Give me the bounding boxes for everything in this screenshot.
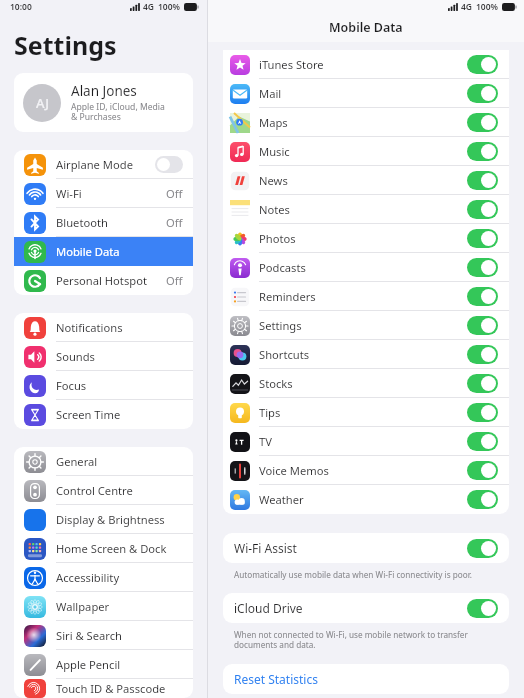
button[interactable] (467, 287, 498, 306)
button[interactable]: AJ (14, 73, 193, 132)
staticText: Display & Brightness (56, 512, 165, 527)
staticText: Alan Jones (71, 82, 137, 100)
staticText: Automatically use mobile data when Wi-Fi… (234, 569, 472, 580)
staticText: Mobile Data (56, 244, 120, 259)
button[interactable] (155, 156, 183, 173)
button[interactable]: Touch ID & Passcode (14, 679, 193, 698)
staticText: Photos (259, 231, 296, 246)
button[interactable]: Maps (223, 108, 509, 137)
button[interactable] (467, 403, 498, 422)
staticText: Personal Hotspot (56, 273, 147, 288)
button[interactable]: Stocks (223, 369, 509, 398)
button[interactable] (467, 490, 498, 509)
staticText: Mobile Data (329, 19, 403, 36)
button[interactable]: Photos (223, 224, 509, 253)
button[interactable] (467, 374, 498, 393)
button[interactable]: Podcasts (223, 253, 509, 282)
staticText: 4G (143, 1, 155, 13)
button[interactable] (467, 84, 498, 103)
staticText: Bluetooth (56, 215, 108, 230)
button[interactable]: Wallpaper (14, 592, 193, 621)
staticText: Apple Pencil (56, 657, 121, 672)
button[interactable]: Shortcuts (223, 340, 509, 369)
button[interactable]: Control Centre (14, 476, 193, 505)
staticText: Control Centre (56, 483, 133, 498)
staticText: Focus (56, 378, 87, 393)
button[interactable]: Voice Memos (223, 456, 509, 485)
staticText: 100% (476, 1, 499, 13)
button[interactable]: Apple Pencil (14, 650, 193, 679)
button[interactable] (467, 258, 498, 277)
button[interactable]: Mobile Data (14, 237, 193, 266)
button[interactable]: Siri & Search (14, 621, 193, 650)
button[interactable]: Accessibility (14, 563, 193, 592)
staticText: Wi-Fi (56, 186, 82, 201)
staticText: Reminders (259, 289, 316, 304)
staticText: iCloud Drive (234, 600, 303, 616)
staticText: Shortcuts (259, 347, 310, 362)
staticText: Mail (259, 86, 282, 101)
staticText: Notifications (56, 320, 123, 335)
button[interactable]: iTunes Store (223, 50, 509, 79)
staticText: Off (166, 186, 183, 201)
staticText: Siri & Search (56, 628, 122, 643)
button[interactable]: News (223, 166, 509, 195)
staticText: General (56, 454, 98, 469)
staticText: Settings (14, 28, 117, 62)
staticText: Maps (259, 115, 288, 130)
button[interactable]: Focus (14, 371, 193, 400)
button[interactable]: Bluetooth (14, 208, 193, 237)
button[interactable]: Settings (223, 311, 509, 340)
staticText: Music (259, 144, 290, 159)
button[interactable]: iCloud Drive (223, 593, 509, 623)
button[interactable] (467, 539, 498, 558)
button[interactable]: Personal Hotspot (14, 266, 193, 295)
button[interactable]: Wi-Fi Assist (223, 533, 509, 563)
button[interactable] (467, 316, 498, 335)
staticText: Stocks (259, 376, 293, 391)
staticText: When not connected to Wi-Fi, use mobile … (234, 629, 468, 651)
staticText: Weather (259, 492, 304, 507)
staticText: Touch ID & Passcode (56, 681, 166, 696)
staticText: iTunes Store (259, 57, 324, 72)
staticText: Tips (259, 405, 281, 420)
button[interactable]: Reset Statistics (223, 664, 509, 694)
button[interactable]: Tips (223, 398, 509, 427)
staticText: Accessibility (56, 570, 120, 585)
staticText: Voice Memos (259, 463, 329, 478)
staticText: Podcasts (259, 260, 306, 275)
button[interactable]: Weather (223, 485, 509, 514)
button[interactable] (467, 55, 498, 74)
staticText: Notes (259, 202, 290, 217)
button[interactable] (467, 432, 498, 451)
button[interactable]: General (14, 447, 193, 476)
button[interactable]: Wi-Fi (14, 179, 193, 208)
staticText: Screen Time (56, 407, 121, 422)
button[interactable]: Airplane Mode (14, 150, 193, 179)
button[interactable]: Screen Time (14, 400, 193, 429)
button[interactable] (467, 142, 498, 161)
button[interactable]: Display & Brightness (14, 505, 193, 534)
staticText: Home Screen & Dock (56, 541, 167, 556)
button[interactable] (467, 345, 498, 364)
button[interactable]: Reminders (223, 282, 509, 311)
button[interactable]: TV (223, 427, 509, 456)
staticText: 4G (461, 1, 473, 13)
staticText: Sounds (56, 349, 95, 364)
staticText: 100% (158, 1, 181, 13)
button[interactable] (467, 171, 498, 190)
button[interactable] (467, 599, 498, 618)
staticText: Apple ID, iCloud, Media & Purchases (71, 101, 165, 123)
button[interactable]: Music (223, 137, 509, 166)
button[interactable] (467, 461, 498, 480)
button[interactable]: Notes (223, 195, 509, 224)
button[interactable] (467, 113, 498, 132)
button[interactable]: Home Screen & Dock (14, 534, 193, 563)
button[interactable]: Mail (223, 79, 509, 108)
button[interactable] (467, 229, 498, 248)
staticText: Settings (259, 318, 302, 333)
button[interactable]: Notifications (14, 313, 193, 342)
button[interactable] (467, 200, 498, 219)
staticText: Wallpaper (56, 599, 110, 614)
button[interactable]: Sounds (14, 342, 193, 371)
